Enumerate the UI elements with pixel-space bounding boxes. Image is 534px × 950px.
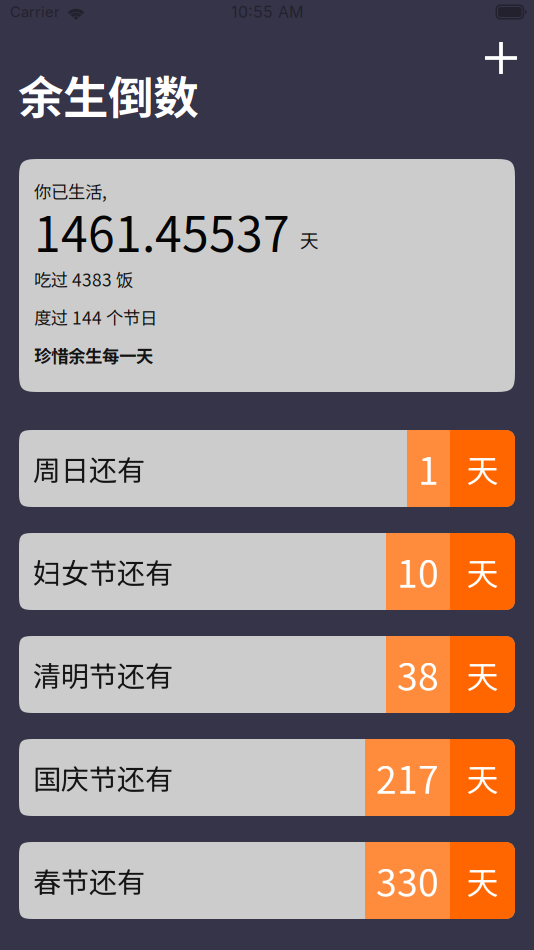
button[interactable]: 清明节还有 [19, 636, 515, 713]
staticText: 天 [466, 857, 498, 904]
staticText: Carrier [10, 3, 60, 21]
staticText: 清明节还有 [33, 654, 173, 695]
staticText: 38 [397, 647, 439, 702]
staticText: 217 [376, 750, 439, 805]
staticText: 天 [300, 226, 319, 253]
staticText: 吃过 4383 饭 [34, 266, 133, 292]
staticText: 妇女节还有 [33, 551, 173, 592]
staticText: 你已生活, [34, 178, 107, 204]
staticText: 天 [466, 651, 498, 698]
staticText: 度过 144 个节日 [34, 304, 157, 330]
staticText: 1 [418, 441, 439, 496]
staticText: 周日还有 [33, 448, 145, 489]
staticText: 1461.45537 [34, 196, 290, 266]
staticText: 330 [376, 853, 439, 908]
button[interactable]: 周日还有 [19, 430, 515, 507]
staticText: 珍惜余生每一天 [34, 342, 153, 368]
staticText: 天 [466, 548, 498, 595]
button[interactable]: 春节还有 [19, 842, 515, 919]
staticText: 10:55 AM [231, 2, 303, 22]
button[interactable]: Add countdown [478, 35, 524, 81]
button[interactable]: 妇女节还有 [19, 533, 515, 610]
staticText: 春节还有 [33, 860, 145, 901]
staticText: 天 [466, 754, 498, 801]
staticText: 天 [466, 445, 498, 492]
staticText: 10 [397, 544, 439, 599]
staticText: 国庆节还有 [33, 757, 173, 798]
button[interactable]: 国庆节还有 [19, 739, 515, 816]
staticText: 余生倒数 [18, 62, 198, 127]
